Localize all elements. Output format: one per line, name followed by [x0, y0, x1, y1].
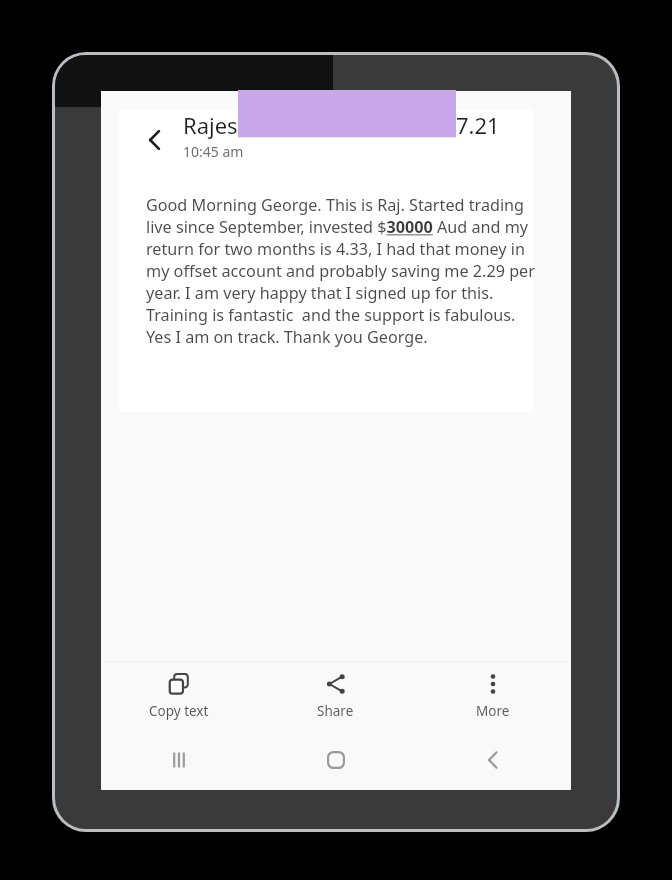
staticText: Good Morning George. This is Raj. Starte… [146, 194, 541, 348]
button[interactable]: Copy text [101, 662, 257, 730]
staticText: Copy text [149, 702, 209, 720]
button[interactable]: More [414, 662, 571, 730]
staticText: 10:45 am [183, 142, 244, 161]
button[interactable]: Recent apps [101, 730, 257, 790]
button[interactable]: Back [131, 116, 179, 164]
button[interactable]: Home [257, 730, 414, 790]
staticText: 7.21 [456, 110, 500, 140]
button[interactable]: Share [257, 662, 414, 730]
staticText: Share [317, 702, 354, 720]
staticText: Rajesh [183, 110, 252, 140]
button[interactable]: Back [414, 730, 571, 790]
staticText: More [476, 702, 510, 720]
